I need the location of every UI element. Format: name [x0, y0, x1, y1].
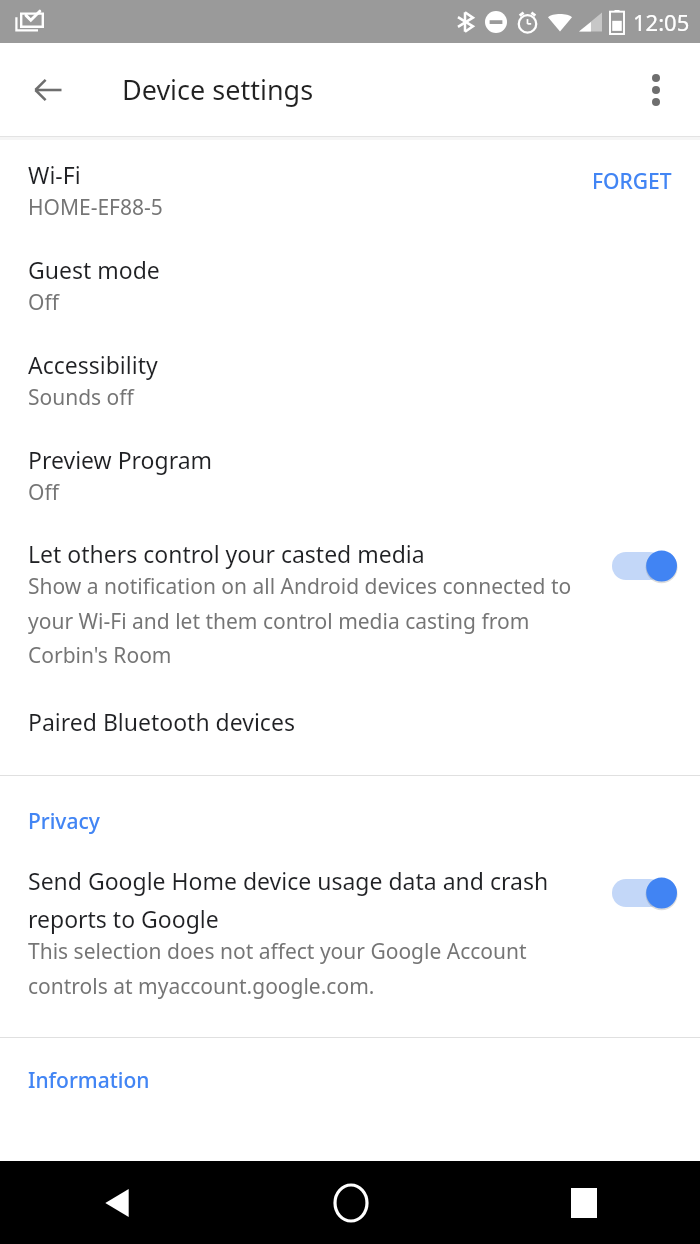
button[interactable]: Paired Bluetooth devices — [0, 706, 700, 737]
button[interactable]: FORGET — [564, 161, 700, 202]
staticText: Accessibility — [28, 349, 158, 380]
staticText: This selection does not affect your Goog… — [28, 937, 602, 1000]
button[interactable]: Toggle on — [612, 546, 678, 586]
staticText: 12:05 — [633, 7, 690, 37]
staticText: Send Google Home device usage data and c… — [28, 865, 602, 935]
button[interactable]: Toggle on — [612, 873, 678, 913]
button[interactable]: Let others control your casted media — [0, 538, 700, 669]
staticText: HOME-EF88-5 — [28, 193, 163, 222]
staticText: FORGET — [592, 167, 672, 196]
button[interactable]: Accessibility — [0, 349, 700, 412]
button[interactable]: Preview Program — [0, 444, 700, 507]
staticText: Show a notification on all Android devic… — [28, 572, 602, 669]
button[interactable]: Back — [20, 62, 76, 118]
staticText: Information — [28, 1066, 150, 1095]
staticText: Sounds off — [28, 383, 134, 412]
staticText: Off — [28, 288, 59, 317]
button[interactable]: Home — [234, 1161, 467, 1244]
staticText: Guest mode — [28, 254, 160, 285]
staticText: Off — [28, 478, 59, 507]
button[interactable]: More options — [630, 64, 682, 116]
button[interactable]: Send Google Home device usage data and c… — [0, 865, 700, 1000]
staticText: Paired Bluetooth devices — [28, 706, 295, 737]
staticText: Wi-Fi — [28, 159, 81, 190]
button[interactable]: Wi-Fi — [0, 159, 700, 222]
button[interactable]: Recent apps — [467, 1161, 700, 1244]
staticText: Device settings — [122, 71, 314, 108]
staticText: Privacy — [28, 807, 100, 836]
button[interactable]: Back — [0, 1161, 234, 1244]
staticText: Preview Program — [28, 444, 213, 475]
staticText: Let others control your casted media — [28, 538, 425, 569]
button[interactable]: Guest mode — [0, 254, 700, 317]
